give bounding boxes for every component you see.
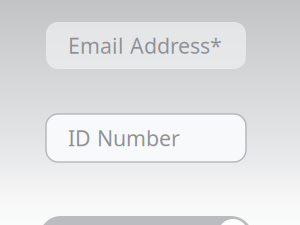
- staticText: Email Address*: [68, 31, 222, 60]
- button[interactable]: Continue: [39, 216, 253, 225]
- staticText: ID Number: [68, 124, 180, 152]
- button[interactable]: Email Address*: [46, 22, 246, 69]
- button[interactable]: ID Number: [46, 114, 246, 162]
